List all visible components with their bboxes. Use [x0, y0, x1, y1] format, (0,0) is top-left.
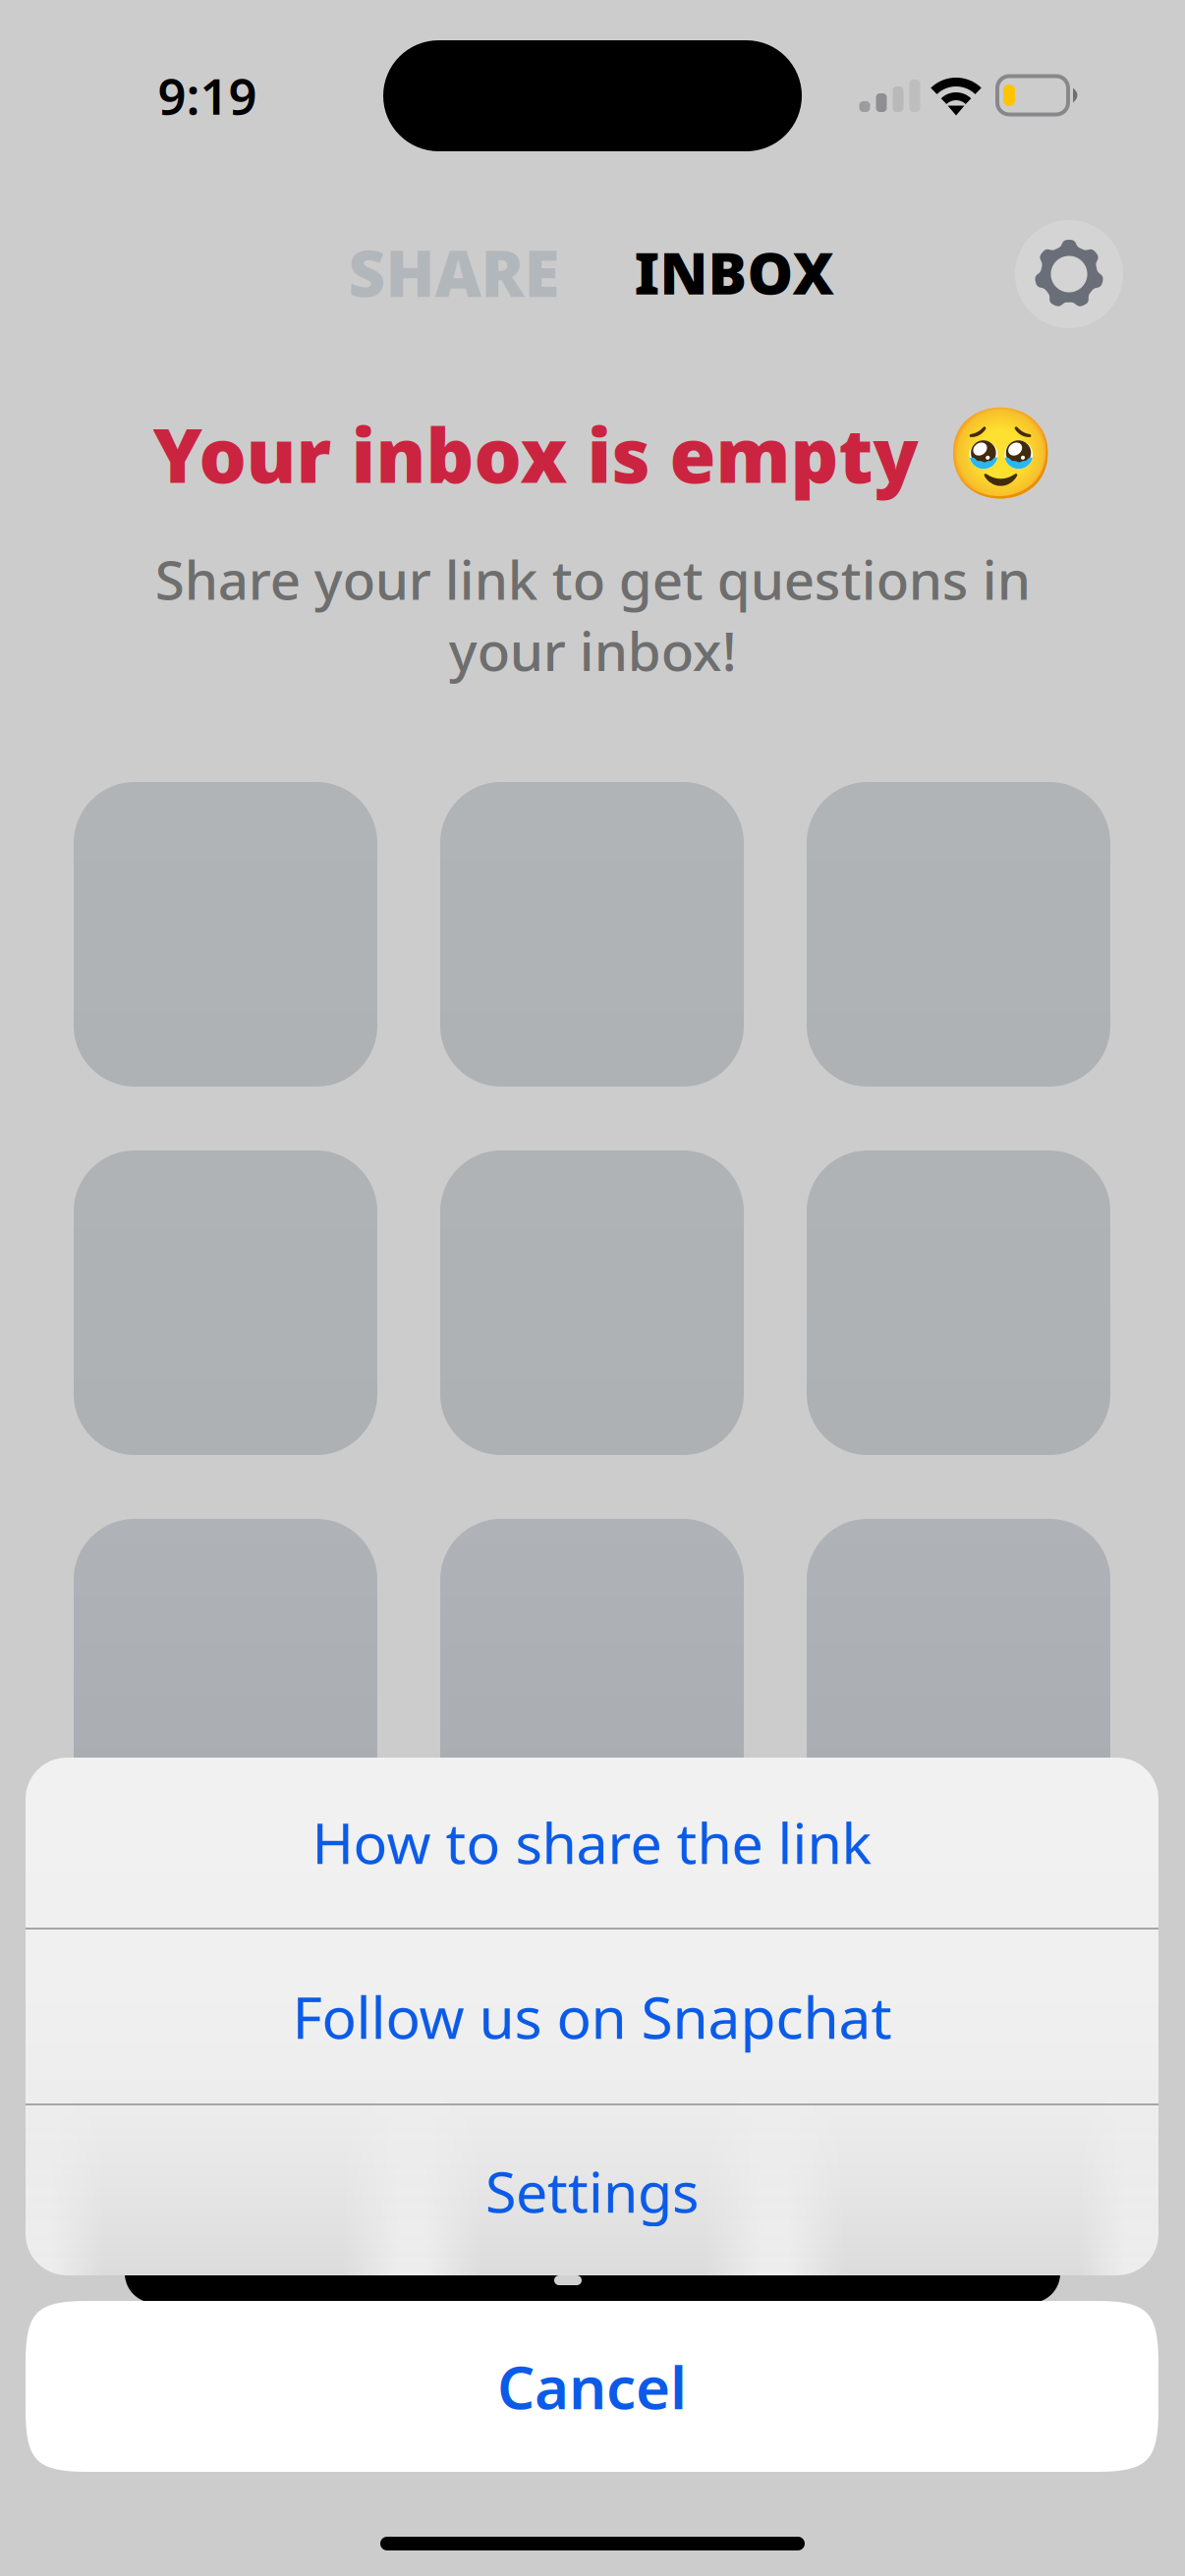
- staticText: Your inbox is empty: [153, 404, 918, 503]
- button[interactable]: Settings: [1015, 220, 1123, 328]
- staticText: How to share the link: [312, 1805, 872, 1879]
- button[interactable]: Cancel: [26, 2301, 1158, 2472]
- button[interactable]: How to share the link: [26, 1757, 1158, 1928]
- staticText: Share your link to get questions in your…: [155, 543, 1030, 686]
- staticText: 9:19: [158, 62, 257, 128]
- button[interactable]: SHARE: [292, 218, 616, 326]
- staticText: Cancel: [497, 2347, 687, 2426]
- button[interactable]: INBOX: [572, 218, 896, 326]
- staticText: SHARE: [348, 230, 560, 315]
- staticText: 🥹: [945, 403, 1056, 505]
- staticText: Settings: [485, 2153, 699, 2228]
- staticText: INBOX: [634, 234, 834, 310]
- button[interactable]: Follow us on Snapchat: [26, 1930, 1158, 2103]
- staticText: Follow us on Snapchat: [292, 1978, 892, 2055]
- button[interactable]: Settings: [26, 2105, 1158, 2276]
